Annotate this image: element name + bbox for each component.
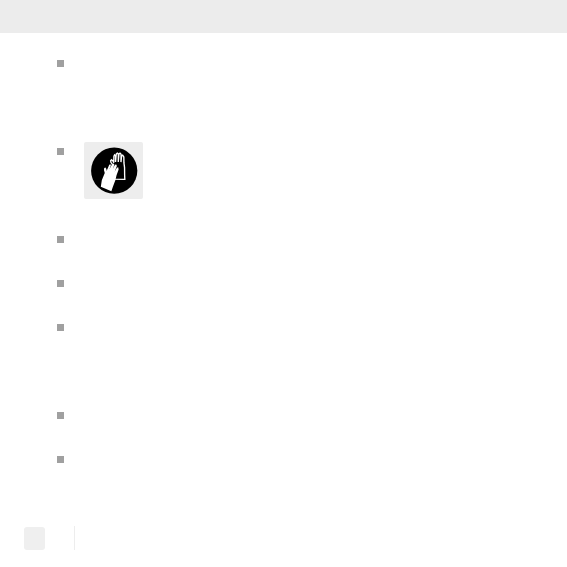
button[interactable]: Wear protective gloves [84,142,143,199]
